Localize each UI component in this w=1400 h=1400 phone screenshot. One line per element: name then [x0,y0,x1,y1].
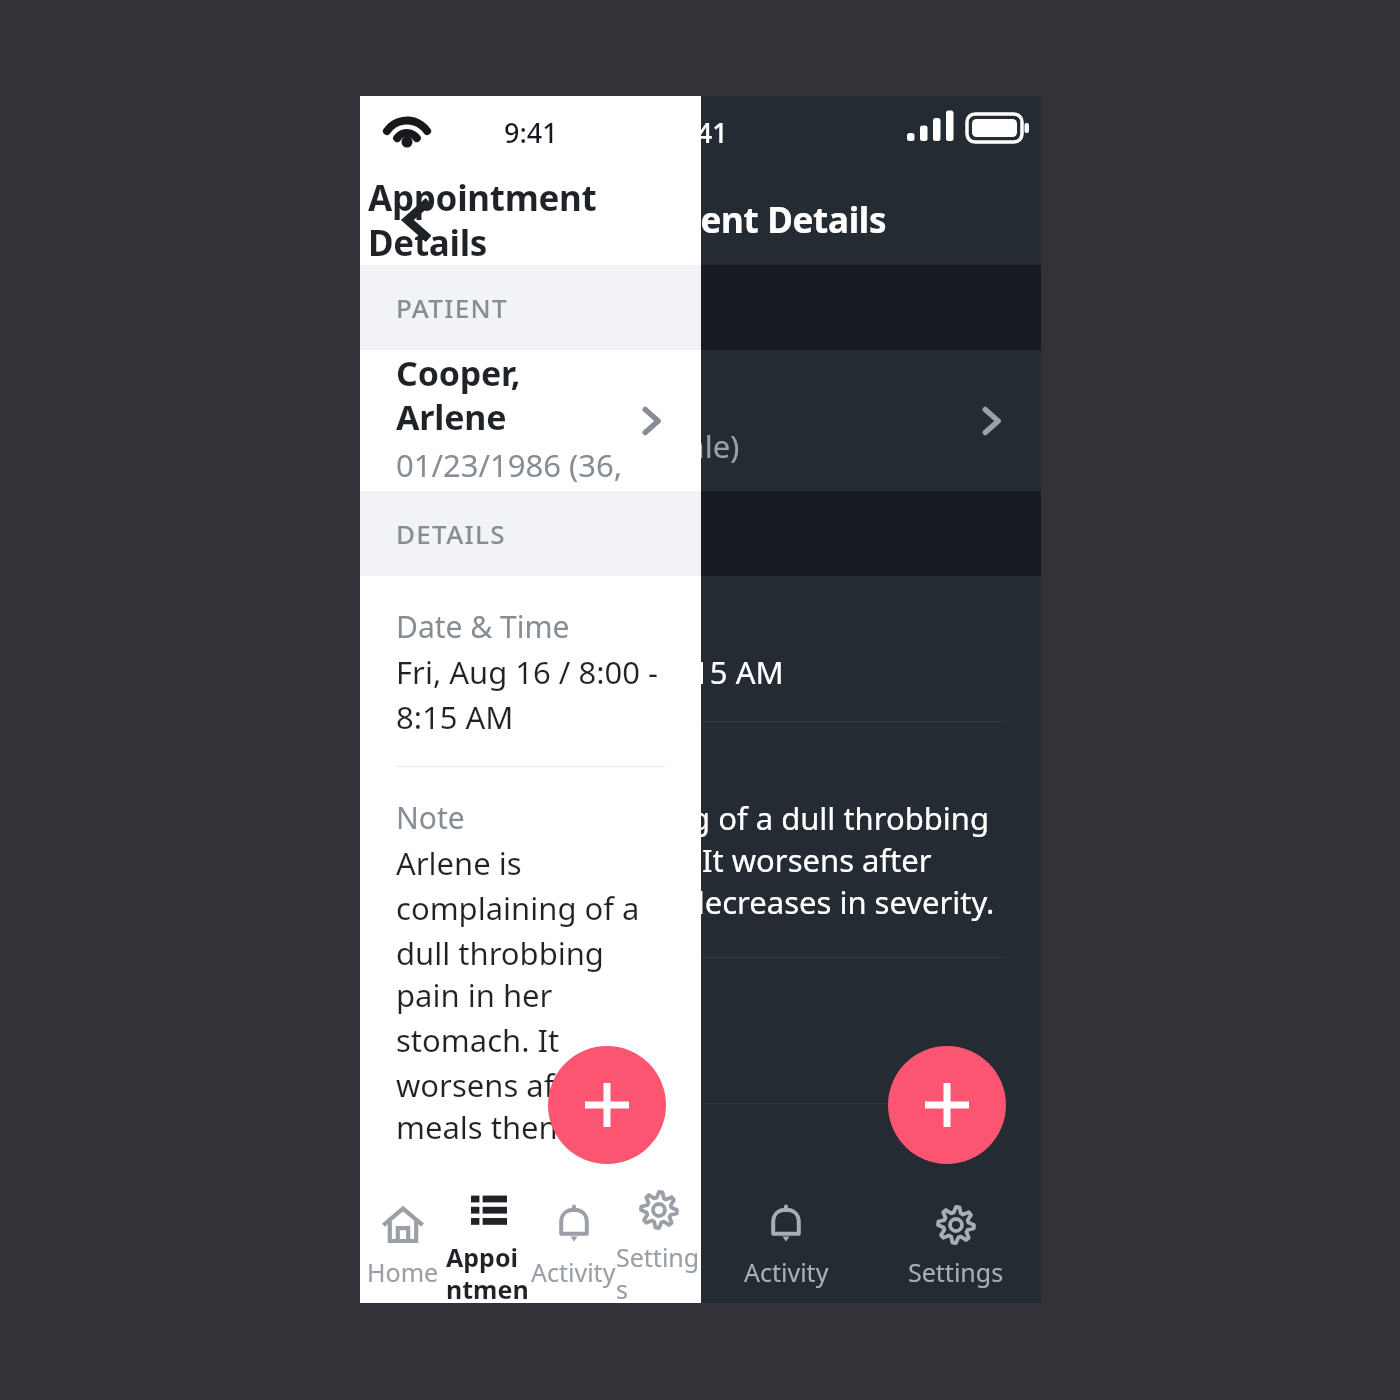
button[interactable]: Appointments [531,1190,701,1303]
staticText: Abdominal Pain [396,1033,626,1075]
staticText: Settings [908,1255,1004,1289]
button[interactable]: Appointments [446,1190,531,1303]
button[interactable]: Activity [531,1190,616,1303]
staticText: 9:41 [504,114,558,151]
staticText: Arlene is complaining of a dull throbbin… [396,842,665,974]
staticText: Note [396,797,465,838]
button[interactable]: Activity [701,1190,871,1303]
staticText: meals then steadily decreases in severit… [396,881,995,923]
staticText: Home [410,1255,482,1289]
staticText: Appointment Details [368,174,701,265]
button[interactable]: Date & Time [360,576,701,767]
staticText: Fri, Aug 16 / 8:00 - 8:15 AM [396,651,784,693]
staticText: Cooper, Arlene [396,375,640,421]
staticText: Type [396,1134,463,1162]
staticText: Fri, Aug 16 / 8:00 - 8:15 AM [396,651,665,738]
button[interactable]: Add appointment [888,1046,1006,1164]
staticText: DETAILS [396,516,506,551]
staticText: 01/23/1986 (36, female) [396,444,633,491]
button[interactable]: Add appointment [548,1046,666,1164]
staticText: Cooper, Arlene [396,350,633,440]
staticText: DETAILS [396,516,506,551]
staticText: Appointments [446,1240,531,1303]
staticText: Note [396,752,465,793]
button[interactable]: Back [378,181,456,259]
staticText: Appointment Details [530,196,887,244]
button[interactable]: Note [360,767,701,1190]
staticText: Reason [396,988,500,1029]
button[interactable]: Back [378,181,456,259]
staticText: Date & Time [396,606,570,647]
staticText: pain in her stomach. It worsens after [396,974,665,1106]
staticText: Date & Time [396,606,570,647]
button[interactable]: Note [360,722,1041,958]
staticText: pain in her stomach. It worsens after [396,839,932,881]
staticText: PATIENT [396,290,508,325]
staticText: PATIENT [396,290,508,325]
button[interactable]: Home [360,1190,531,1303]
staticText: Home [367,1255,439,1289]
button[interactable]: Type [360,1104,1041,1190]
staticText: Activity [744,1255,829,1289]
button[interactable]: Cooper, Arlene [360,350,701,491]
button[interactable]: Date & Time [360,576,1041,722]
button[interactable]: Home [360,1190,446,1303]
staticText: Activity [531,1255,616,1289]
staticText: 01/23/1986 (36, female) [396,425,740,467]
staticText: Appointments [531,1240,701,1303]
button[interactable]: Settings [871,1190,1041,1303]
button[interactable]: Cooper, Arlene [360,350,1041,491]
button[interactable]: Reason [360,958,1041,1104]
staticText: Arlene is complaining of a dull throbbin… [396,797,990,839]
staticText: meals then steadily decreases in severit… [396,1106,665,1156]
staticText: Settings [616,1240,701,1303]
staticText: 9:41 [674,114,728,151]
button[interactable]: Settings [616,1190,701,1303]
